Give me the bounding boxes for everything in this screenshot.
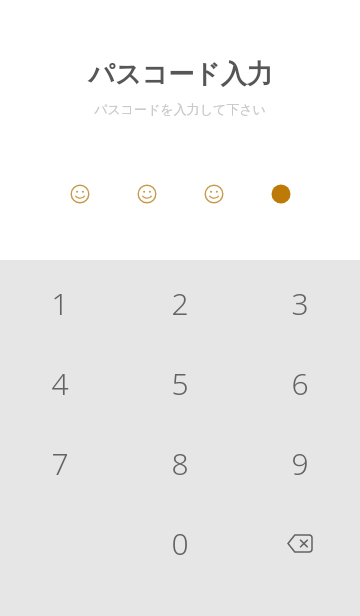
button[interactable]: 1 xyxy=(0,263,120,343)
staticText: 6 xyxy=(291,363,309,404)
button[interactable]: Empty passcode digit xyxy=(137,184,157,204)
staticText: 4 xyxy=(51,363,69,404)
button[interactable]: 2 xyxy=(120,263,240,343)
staticText: 8 xyxy=(171,443,189,484)
button[interactable]: Empty passcode digit xyxy=(204,184,224,204)
button[interactable]: Backspace xyxy=(240,503,360,583)
button[interactable]: 4 xyxy=(0,343,120,423)
button[interactable]: 3 xyxy=(240,263,360,343)
button[interactable]: Entered passcode digit xyxy=(271,184,291,204)
staticText: パスコード入力 xyxy=(88,58,273,91)
staticText: 9 xyxy=(291,443,309,484)
staticText: 1 xyxy=(51,283,69,324)
staticText: 7 xyxy=(51,443,69,484)
button[interactable]: 5 xyxy=(120,343,240,423)
staticText: 3 xyxy=(291,283,309,324)
button[interactable]: 0 xyxy=(120,503,240,583)
staticText: 5 xyxy=(171,363,189,404)
button[interactable]: 9 xyxy=(240,423,360,503)
button[interactable]: 8 xyxy=(120,423,240,503)
staticText: パスコードを入力して下さい xyxy=(94,101,266,117)
staticText: 0 xyxy=(171,523,189,564)
staticText: 2 xyxy=(171,283,189,324)
button[interactable]: 6 xyxy=(240,343,360,423)
button[interactable]: 7 xyxy=(0,423,120,503)
button[interactable]: Empty passcode digit xyxy=(70,184,90,204)
